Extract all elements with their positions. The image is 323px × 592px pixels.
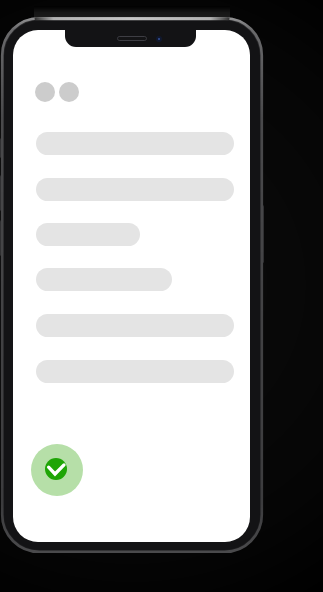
button[interactable]: [31, 444, 83, 496]
